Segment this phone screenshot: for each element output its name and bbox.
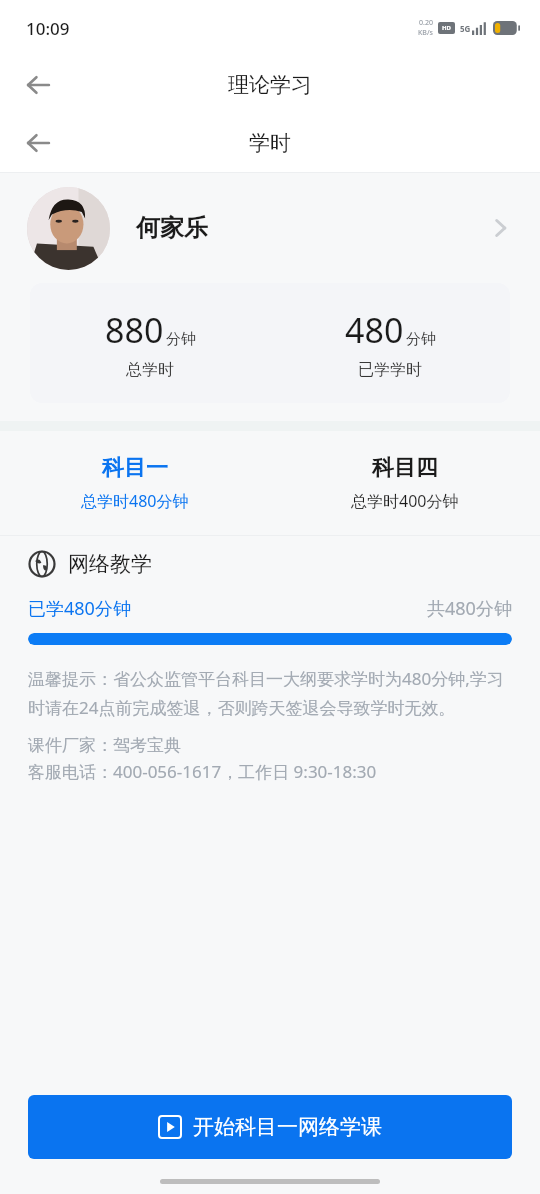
staticText: 分钟 <box>166 330 196 349</box>
staticText: 已学学时 <box>358 360 422 380</box>
staticText: HD <box>442 24 451 32</box>
staticText: 480 <box>345 307 404 353</box>
staticText: KB/s <box>418 28 433 38</box>
staticText: 共480分钟 <box>427 596 512 621</box>
staticText: 理论学习 <box>228 72 312 98</box>
staticText: 温馨提示：省公众监管平台科目一大纲要求学时为480分钟,学习时请在24点前完成签… <box>28 667 512 719</box>
staticText: 开始科目一网络学课 <box>193 1114 382 1140</box>
staticText: 科目一 <box>102 454 168 482</box>
other: Profile details <box>480 208 520 248</box>
staticText: 分钟 <box>406 330 436 349</box>
staticText: 课件厂家：驾考宝典 <box>28 735 181 756</box>
staticText: 何家乐 <box>136 213 208 243</box>
staticText: 客服电话：400-056-1617，工作日 9:30-18:30 <box>28 760 377 783</box>
staticText: 880 <box>105 307 164 353</box>
staticText: 学时 <box>249 130 291 156</box>
staticText: 总学时 <box>126 360 174 380</box>
button[interactable]: Back <box>14 61 62 109</box>
staticText: 已学480分钟 <box>28 596 131 621</box>
button[interactable]: 科目一 <box>0 431 270 535</box>
button[interactable]: 科目四 <box>270 431 540 535</box>
button[interactable]: 何家乐 <box>0 173 540 283</box>
staticText: 网络教学 <box>68 551 152 577</box>
staticText: 总学时480分钟 <box>81 490 189 512</box>
button[interactable]: Back <box>14 119 62 167</box>
staticText: 总学时400分钟 <box>351 490 459 512</box>
staticText: 0.20 <box>419 18 433 28</box>
button[interactable]: 开始科目一网络学课 <box>28 1095 512 1159</box>
staticText: 5G <box>460 23 471 34</box>
staticText: 10:09 <box>26 17 70 40</box>
staticText: 科目四 <box>372 454 438 482</box>
